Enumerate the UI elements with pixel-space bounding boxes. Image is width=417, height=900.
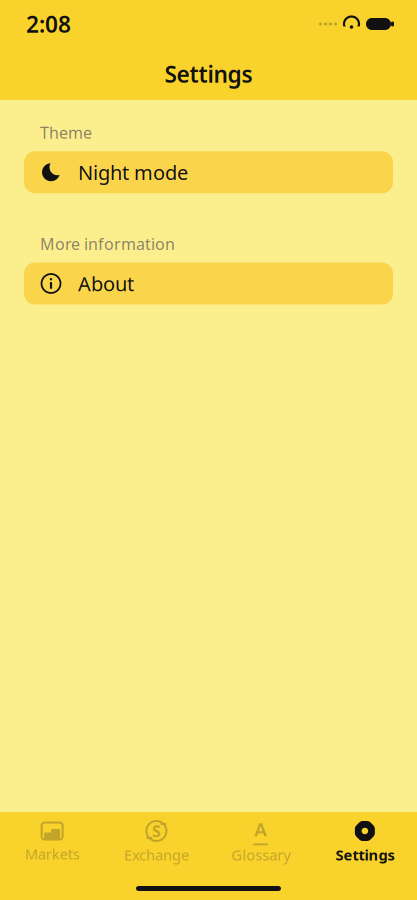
button[interactable]: Night mode: [24, 151, 393, 193]
staticText: Settings: [335, 845, 394, 864]
staticText: Settings: [164, 59, 252, 89]
staticText: More information: [40, 233, 175, 254]
button[interactable]: About: [24, 262, 393, 304]
button[interactable]: A: [208, 812, 313, 870]
button[interactable]: S: [104, 812, 208, 870]
button[interactable]: Markets: [0, 813, 104, 869]
staticText: A: [254, 817, 267, 841]
staticText: Glossary: [231, 845, 290, 864]
button[interactable]: Settings: [313, 812, 417, 870]
staticText: Exchange: [124, 845, 189, 864]
staticText: Night mode: [78, 159, 188, 186]
staticText: 2:08: [26, 9, 71, 39]
staticText: About: [78, 270, 134, 297]
staticText: Theme: [40, 122, 92, 143]
staticText: Markets: [25, 844, 80, 863]
staticText: S: [152, 820, 161, 842]
